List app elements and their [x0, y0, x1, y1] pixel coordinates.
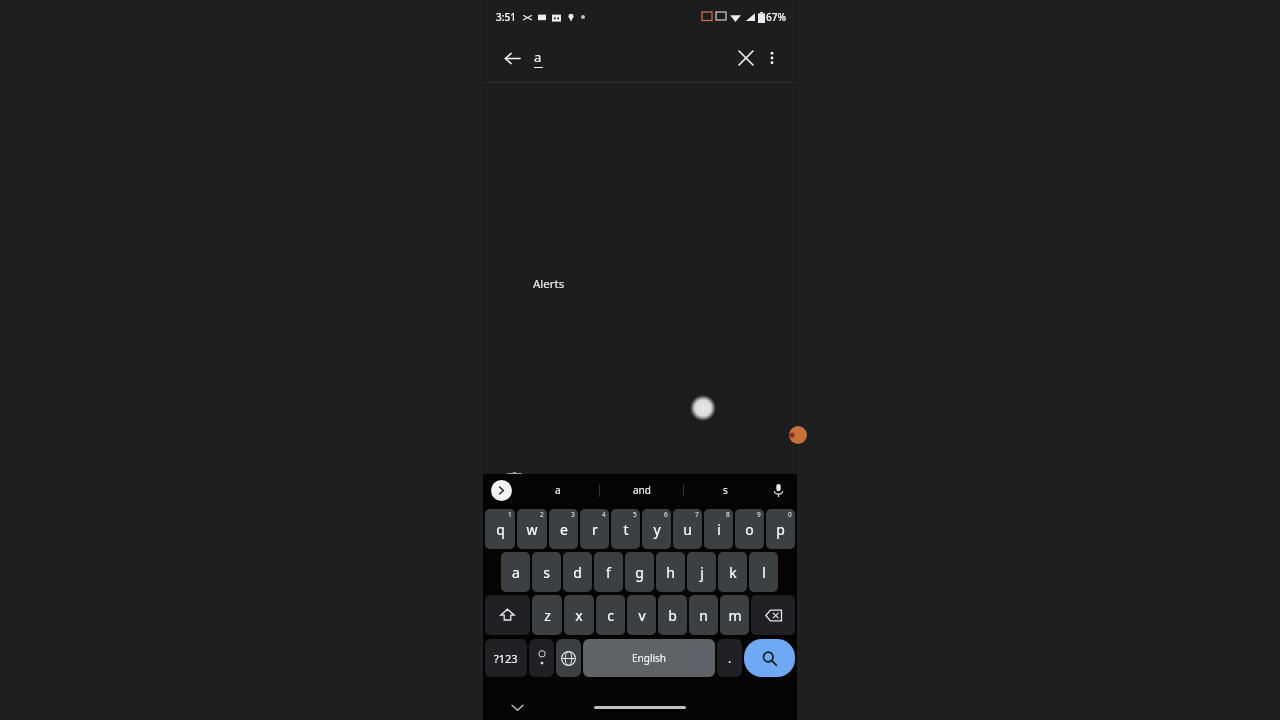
staticText: z: [544, 606, 551, 625]
staticText: 2: [540, 510, 544, 519]
staticText: t: [623, 520, 629, 539]
button[interactable]: e: [549, 509, 578, 549]
button[interactable]: Back: [497, 43, 527, 73]
button[interactable]: k: [718, 552, 747, 592]
button[interactable]: p: [766, 509, 795, 549]
staticText: 3: [571, 510, 575, 519]
staticText: English: [632, 651, 667, 665]
button[interactable]: i: [704, 509, 733, 549]
staticText: l: [762, 563, 766, 582]
button[interactable]: j: [687, 552, 716, 592]
staticText: 8: [726, 510, 730, 519]
button[interactable]: c: [596, 595, 625, 635]
staticText: v: [638, 606, 646, 625]
button[interactable]: s: [532, 552, 561, 592]
button[interactable]: g: [625, 552, 654, 592]
staticText: q: [496, 520, 505, 539]
button[interactable]: Search: [744, 639, 795, 677]
staticText: 0: [788, 510, 792, 519]
button[interactable]: h: [656, 552, 685, 592]
staticText: r: [592, 520, 598, 539]
staticText: 5: [633, 510, 637, 519]
staticText: k: [729, 563, 737, 582]
staticText: w: [526, 520, 538, 539]
staticText: 3:51: [496, 10, 516, 24]
staticText: y: [653, 520, 661, 539]
button[interactable]: r: [580, 509, 609, 549]
button[interactable]: Backspace: [751, 595, 795, 635]
button[interactable]: a: [517, 474, 599, 506]
button[interactable]: l: [749, 552, 778, 592]
staticText: m: [728, 606, 742, 625]
button[interactable]: u: [673, 509, 702, 549]
button[interactable]: b: [658, 595, 687, 635]
button[interactable]: Shift: [485, 595, 530, 635]
staticText: x: [575, 606, 583, 625]
staticText: a: [512, 563, 520, 582]
staticText: d: [573, 563, 582, 582]
staticText: c: [607, 606, 614, 625]
button[interactable]: z: [532, 595, 562, 635]
staticText: 4: [602, 510, 606, 519]
staticText: e: [560, 520, 568, 539]
staticText: f: [606, 563, 611, 582]
button[interactable]: Clear search: [731, 43, 761, 73]
button[interactable]: Emoji and comma: [529, 639, 554, 677]
staticText: s: [723, 483, 728, 497]
staticText: a: [534, 48, 542, 66]
button[interactable]: Alerts: [483, 94, 797, 474]
button[interactable]: ?123: [485, 639, 527, 677]
button[interactable]: v: [627, 595, 656, 635]
button[interactable]: d: [563, 552, 592, 592]
staticText: h: [666, 563, 675, 582]
staticText: u: [683, 520, 692, 539]
staticText: and: [633, 483, 651, 497]
button[interactable]: Hide keyboard: [507, 697, 527, 717]
staticText: a: [555, 483, 561, 497]
button[interactable]: x: [564, 595, 594, 635]
staticText: p: [776, 520, 785, 539]
staticText: s: [543, 563, 550, 582]
button[interactable]: s: [684, 474, 767, 506]
staticText: .: [728, 650, 732, 666]
button[interactable]: y: [642, 509, 671, 549]
button[interactable]: and: [600, 474, 683, 506]
staticText: n: [699, 606, 708, 625]
staticText: 67%: [766, 10, 786, 24]
button[interactable]: m: [720, 595, 749, 635]
staticText: o: [745, 520, 754, 539]
button[interactable]: o: [735, 509, 764, 549]
button[interactable]: .: [717, 639, 742, 677]
button[interactable]: Expand suggestions: [491, 480, 512, 501]
staticText: i: [717, 520, 721, 539]
staticText: 6: [664, 510, 668, 519]
button[interactable]: More options: [757, 43, 787, 73]
staticText: g: [635, 563, 644, 582]
button[interactable]: English: [583, 639, 715, 677]
button[interactable]: w: [517, 509, 547, 549]
staticText: 7: [695, 510, 699, 519]
staticText: b: [668, 606, 677, 625]
button[interactable]: Voice input: [767, 479, 789, 501]
staticText: ?123: [494, 651, 518, 666]
button[interactable]: Switch language: [556, 639, 581, 677]
staticText: 1: [508, 510, 512, 519]
staticText: j: [700, 563, 704, 582]
button[interactable]: a: [501, 552, 530, 592]
staticText: Alerts: [533, 276, 565, 292]
button[interactable]: q: [485, 509, 515, 549]
button[interactable]: f: [594, 552, 623, 592]
button[interactable]: n: [689, 595, 718, 635]
button[interactable]: t: [611, 509, 640, 549]
staticText: 9: [757, 510, 761, 519]
